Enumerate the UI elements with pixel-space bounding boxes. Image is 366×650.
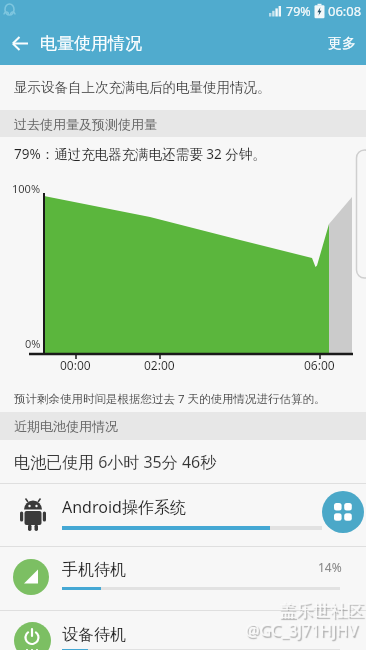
staticText: 近期电池使用情况 [14, 418, 118, 434]
staticText: 02:00 [144, 357, 175, 373]
staticText: 手机待机 [62, 560, 126, 580]
staticText: 14% [318, 559, 342, 575]
staticText: 100% [12, 181, 41, 196]
staticText: 0% [25, 336, 41, 351]
staticText: 06:00 [304, 357, 335, 373]
staticText: 00:00 [60, 357, 91, 373]
staticText: 79%：通过充电器充满电还需要 32 分钟。 [14, 145, 266, 163]
staticText: Android操作系统 [62, 496, 186, 518]
button[interactable]: Android操作系统 [0, 484, 366, 546]
staticText: 过去使用量及预测使用量 [14, 116, 157, 132]
staticText: 79% [286, 3, 311, 20]
button[interactable]: 更多 [328, 22, 366, 65]
button[interactable] [0, 22, 40, 65]
staticText: @GC_3J71HJHV [245, 619, 358, 641]
staticText: 预计剩余使用时间是根据您过去 7 天的使用情况进行估算的。 [14, 391, 326, 407]
staticText: 电量使用情况 [40, 33, 142, 54]
button[interactable]: 设备待机 [0, 611, 366, 650]
staticText: 电池已使用 6小时 35分 46秒 [14, 451, 217, 473]
staticText: 更多 [328, 35, 356, 53]
staticText: 显示设备自上次充满电后的电量使用情况。 [14, 79, 271, 96]
button[interactable] [322, 491, 364, 533]
staticText: 盖乐世社区 [279, 600, 364, 621]
staticText: 设备待机 [62, 625, 126, 645]
staticText: 06:08 [328, 2, 362, 20]
button[interactable]: 手机待机 [0, 547, 366, 610]
